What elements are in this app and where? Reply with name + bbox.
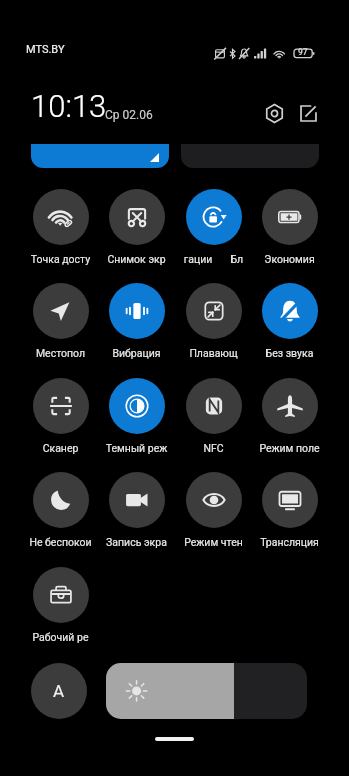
staticText: Экономия [251,253,328,265]
staticText: Трансляция [251,536,328,548]
button[interactable]: Режим чтен [175,472,252,548]
button[interactable]: Без звука [251,283,328,359]
button[interactable]: Местопол [22,283,99,359]
staticText: Сканер [22,442,99,454]
button[interactable]: NFC [175,378,252,454]
button[interactable]: Экономия [251,189,328,265]
staticText: Темный реж [98,442,175,454]
button[interactable]: Сканер [22,378,99,454]
staticText: Вибрация [98,347,175,359]
button[interactable]: Вибрация [98,283,175,359]
button[interactable]: Рабочий ре [22,567,99,643]
staticText: Без звука [251,347,328,359]
button[interactable]: Трансляция [251,472,328,548]
staticText: 10:13 [31,88,107,124]
staticText: гации Бл [175,253,252,265]
button[interactable]: Режим поле [251,378,328,454]
staticText: Не беспокои [22,536,99,548]
staticText: Режим поле [251,442,328,454]
button[interactable]: Auto brightness [31,663,87,719]
button[interactable]: Запись экра [98,472,175,548]
button[interactable]: Settings [262,101,286,125]
button[interactable]: Снимок экр [98,189,175,265]
staticText: NFC [175,442,252,454]
button[interactable]: Сеть [181,144,319,168]
staticText: 97 [298,47,308,57]
staticText: Ср 02.06 [105,108,153,122]
button[interactable]: Wi-Fi [31,144,169,168]
staticText: A [53,681,65,701]
button[interactable]: Плавающ [175,283,252,359]
button[interactable]: Edit [296,101,320,125]
staticText: Запись экра [98,536,175,548]
button[interactable]: гации Бл [175,189,252,265]
button[interactable]: Не беспокои [22,472,99,548]
staticText: Режим чтен [175,536,252,548]
button[interactable]: Темный реж [98,378,175,454]
staticText: Плавающ [175,347,252,359]
button[interactable]: Brightness [106,663,307,719]
staticText: Точка досту [22,253,99,265]
staticText: Местопол [22,347,99,359]
button[interactable]: Точка досту [22,189,99,265]
staticText: Снимок экр [98,253,175,265]
staticText: Рабочий ре [22,631,99,643]
staticText: MTS.BY [26,43,65,56]
